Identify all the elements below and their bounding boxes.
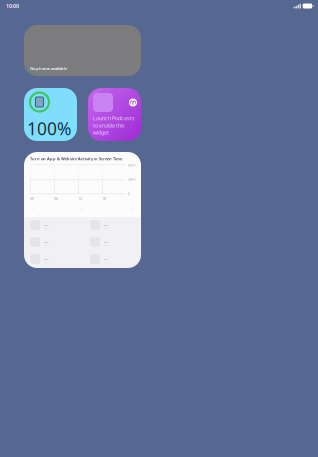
staticText: 00 <box>30 196 34 201</box>
staticText: -- <box>44 255 48 262</box>
button[interactable]: Screen Time widget <box>24 152 141 268</box>
staticText: No photos available <box>30 66 67 71</box>
staticText: -- <box>79 205 83 212</box>
staticText: -- <box>104 238 108 245</box>
staticText: 30m <box>128 177 136 182</box>
staticText: 100% <box>27 117 71 140</box>
staticText: -- <box>30 205 34 212</box>
button[interactable]: Batteries widget, 100 percent <box>24 88 77 141</box>
staticText: 06 <box>54 196 58 201</box>
button[interactable]: Photos widget, no photos available <box>24 25 141 76</box>
staticText: 18 <box>102 196 106 201</box>
staticText: -- <box>104 255 108 262</box>
staticText: -- <box>44 238 48 245</box>
staticText: -- <box>44 221 48 228</box>
staticText: -- <box>129 205 133 212</box>
staticText: 60m <box>128 162 136 168</box>
staticText: 10:00 <box>6 2 19 10</box>
staticText: -- <box>104 221 108 228</box>
button[interactable]: Podcasts widget, launch Podcasts to enab… <box>88 88 141 141</box>
staticText: 0 <box>128 191 130 196</box>
staticText: Launch Podcasts to enable this widget <box>93 115 135 136</box>
staticText: Turn on App & Website Activity in Screen… <box>30 156 123 161</box>
staticText: 12 <box>78 196 82 201</box>
